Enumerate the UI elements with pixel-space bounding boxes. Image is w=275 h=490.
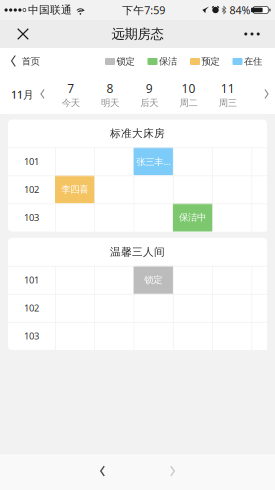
staticText: 中国联通 [28,3,72,16]
staticText: 在住 [244,56,262,67]
staticText: 102 [24,183,39,196]
staticText: 101 [24,155,39,168]
staticText: 103 [24,211,39,224]
staticText: 11 [221,80,235,96]
staticText: 9 [146,80,153,96]
button[interactable]: 首页 [0,48,48,75]
staticText: 84% [230,3,251,17]
staticText: 保洁 [159,56,177,67]
staticText: 温馨三人间 [110,245,165,258]
button[interactable]: Previous page [82,454,122,490]
button[interactable]: Previous days [34,77,51,111]
staticText: 预定 [201,56,219,67]
staticText: 周三 [219,97,237,109]
staticText: 后天 [140,97,158,109]
staticText: 李四喜 [61,184,88,195]
staticText: 10 [181,80,195,96]
button[interactable]: More [233,20,271,48]
staticText: 今天 [62,97,80,109]
staticText: 首页 [22,56,40,67]
staticText: 标准大床房 [110,127,165,140]
staticText: 103 [24,330,39,342]
staticText: 102 [24,302,39,314]
staticText: 101 [24,274,39,286]
staticText: 张三丰… [136,155,170,168]
staticText: 7 [67,80,74,96]
staticText: 下午7:59 [122,3,165,17]
staticText: 远期房态 [111,26,163,42]
button[interactable]: Next days [258,77,275,111]
staticText: 明天 [101,97,119,109]
button[interactable]: Next page [152,454,192,490]
staticText: 周二 [179,97,197,109]
staticText: 保洁中 [179,212,206,223]
button[interactable]: Close [4,20,42,48]
staticText: 锁定 [116,56,134,67]
staticText: 11月 [11,87,34,102]
staticText: 锁定 [144,274,162,286]
staticText: 8 [106,80,113,96]
